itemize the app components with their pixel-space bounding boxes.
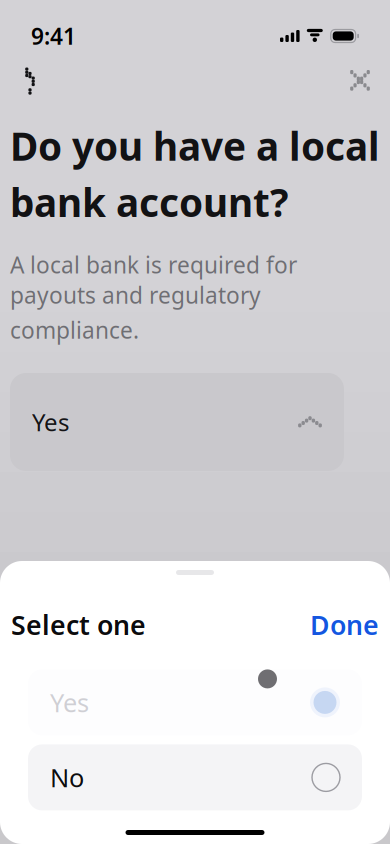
staticText: Done [310, 607, 379, 642]
button[interactable]: Yes [28, 669, 362, 735]
button[interactable]: Close [337, 58, 383, 104]
staticText: No [50, 761, 84, 794]
staticText: Select one [11, 607, 146, 642]
staticText: Yes [32, 406, 69, 438]
staticText: 9:41 [31, 21, 76, 51]
staticText: Yes [50, 686, 89, 719]
staticText: compliance. [10, 315, 139, 345]
staticText: A local bank is required for payouts and… [10, 250, 297, 310]
staticText: Do you have a local [10, 120, 380, 171]
staticText: bank account? [10, 176, 288, 228]
button[interactable]: No [28, 744, 362, 810]
button[interactable]: Done [292, 601, 379, 648]
button[interactable]: Yes [10, 373, 344, 471]
button[interactable]: Back [7, 58, 53, 104]
